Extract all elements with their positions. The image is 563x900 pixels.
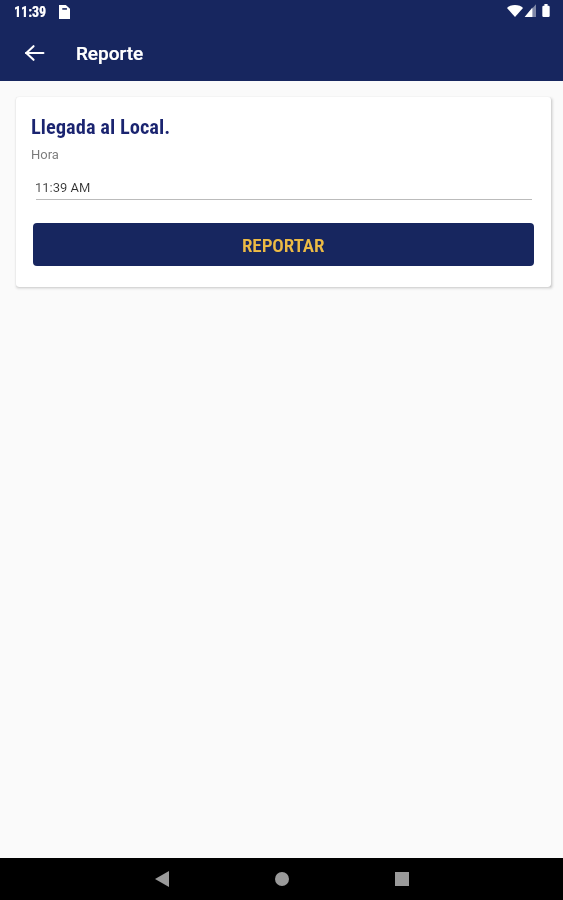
staticText: 11:39	[14, 4, 47, 20]
button[interactable]: Back	[10, 29, 58, 77]
staticText: 11:39 AM	[35, 180, 91, 195]
button[interactable]: REPORTAR	[33, 223, 534, 266]
button[interactable]: Home	[222, 858, 342, 900]
button[interactable]: Recents	[342, 858, 462, 900]
staticText: Reporte	[76, 42, 144, 64]
staticText: Llegada al Local.	[31, 115, 171, 139]
staticText: Hora	[31, 147, 59, 162]
staticText: REPORTAR	[242, 234, 325, 256]
button[interactable]: Back	[102, 858, 222, 900]
